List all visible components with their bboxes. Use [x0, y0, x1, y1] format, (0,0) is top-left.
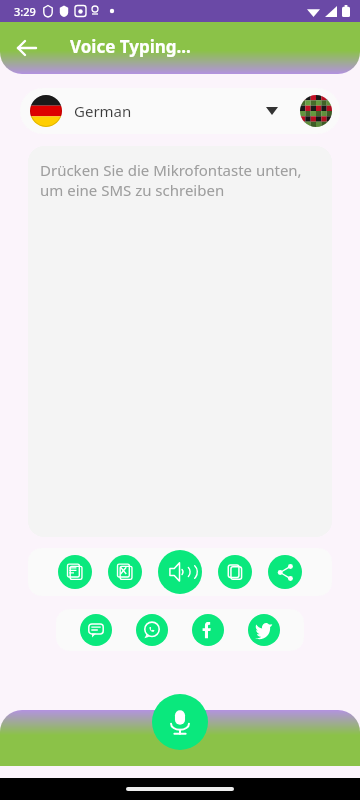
staticText: Voice Typing... [70, 35, 191, 58]
button[interactable]: Drücken Sie die Mikrofontaste unten, um … [28, 146, 332, 537]
button[interactable]: SMS [80, 614, 112, 646]
button[interactable]: Copy [218, 555, 252, 589]
button[interactable]: Clear [108, 555, 142, 589]
button[interactable]: Twitter [248, 614, 280, 646]
button[interactable]: Start voice typing [152, 694, 208, 750]
staticText: 3:29 [14, 4, 36, 19]
button[interactable]: Share [268, 555, 302, 589]
button[interactable]: Back [6, 27, 48, 69]
staticText: German [74, 101, 132, 121]
button[interactable]: All languages [300, 95, 332, 127]
button[interactable]: Speak [158, 550, 202, 594]
button[interactable]: Text file [58, 555, 92, 589]
button[interactable]: German [20, 88, 340, 134]
button[interactable]: Facebook [192, 614, 224, 646]
button[interactable]: WhatsApp [136, 614, 168, 646]
staticText: Drücken Sie die Mikrofontaste unten, um … [40, 160, 322, 200]
